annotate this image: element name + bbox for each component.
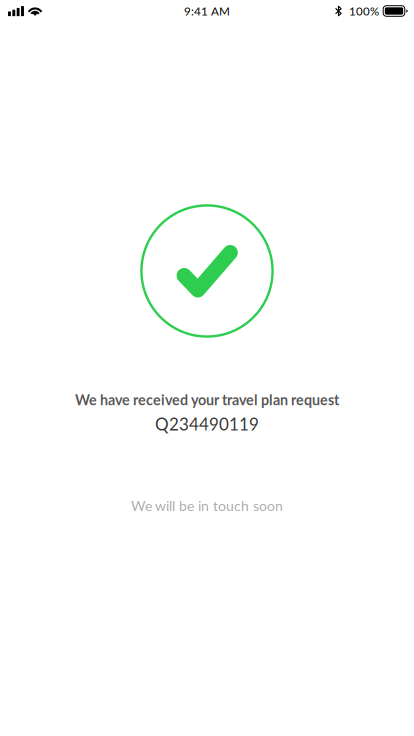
staticText: 100% [349,4,379,18]
staticText: Q234490119 [155,414,259,434]
staticText: We have received your travel plan reques… [75,391,339,408]
staticText: 9:41 AM [184,4,230,18]
staticText: We will be in touch soon [131,497,283,514]
